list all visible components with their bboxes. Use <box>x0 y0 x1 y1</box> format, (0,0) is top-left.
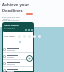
button[interactable] <box>3 53 33 59</box>
button[interactable] <box>3 67 33 72</box>
staticText: Plan your day and <box>2 16 20 19</box>
staticText: TODAY <box>3 18 10 21</box>
button[interactable] <box>33 35 36 38</box>
staticText: 2h 15m left <box>4 27 15 30</box>
button[interactable] <box>3 46 33 52</box>
staticText: Deadlines <box>2 8 23 14</box>
button[interactable]: Focus session <box>2 22 34 32</box>
button[interactable] <box>3 60 33 66</box>
button[interactable] <box>38 35 41 38</box>
button[interactable]: Add task <box>26 55 33 62</box>
staticText: Achieve your <box>2 2 30 8</box>
staticText: Focus session <box>4 24 19 27</box>
staticText: block distractions <box>2 19 20 22</box>
button[interactable] <box>23 35 26 38</box>
button[interactable] <box>18 35 21 38</box>
staticText: This week <box>4 35 15 38</box>
button[interactable] <box>28 35 31 38</box>
